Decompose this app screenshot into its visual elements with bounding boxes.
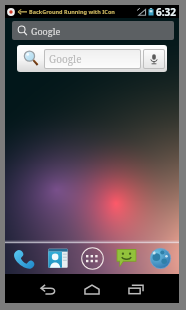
button[interactable]: Messaging [111,244,142,275]
button[interactable]: Google [17,45,167,72]
button[interactable]: Google [12,21,174,40]
staticText: Google [49,52,82,66]
button[interactable]: Recents [119,275,153,303]
button[interactable]: Voice search [144,50,164,68]
button[interactable]: People [42,244,73,275]
button[interactable]: Apps [77,244,108,275]
staticText: BackGround Running with ICon [29,8,115,15]
button[interactable]: Phone [8,244,39,275]
button[interactable]: Home [75,275,109,303]
button[interactable]: Back [31,275,65,303]
button[interactable]: Browser [145,244,176,275]
staticText: 6:32 [156,5,176,18]
staticText: Google [31,25,61,37]
